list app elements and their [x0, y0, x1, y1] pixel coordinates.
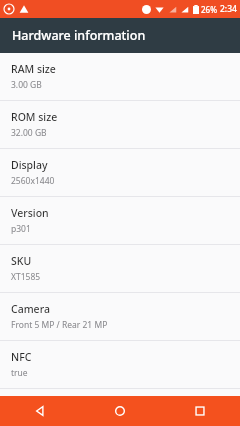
- button[interactable]: ROM size: [0, 101, 240, 148]
- staticText: Version: [11, 206, 49, 220]
- staticText: Camera: [11, 302, 50, 316]
- staticText: 3.00 GB: [11, 79, 42, 91]
- button[interactable]: Home: [80, 396, 160, 426]
- button[interactable]: SKU: [0, 245, 240, 292]
- button[interactable]: Recent apps: [160, 396, 240, 426]
- button[interactable]: RAM size: [0, 53, 240, 100]
- staticText: 2560x1440: [11, 175, 55, 187]
- staticText: 26%: [201, 4, 217, 15]
- button[interactable]: Camera: [0, 293, 240, 340]
- staticText: NFC: [11, 350, 32, 364]
- staticText: SKU: [11, 254, 32, 268]
- staticText: RAM size: [11, 62, 56, 76]
- staticText: ROM size: [11, 110, 58, 124]
- staticText: 2:34: [220, 3, 237, 15]
- staticText: Front 5 MP / Rear 21 MP: [11, 319, 108, 331]
- staticText: p301: [11, 223, 31, 235]
- staticText: Hardware information: [12, 27, 146, 44]
- staticText: Display: [11, 158, 48, 172]
- staticText: 32.00 GB: [11, 127, 47, 139]
- staticText: true: [11, 367, 28, 379]
- button[interactable]: Display: [0, 149, 240, 196]
- button[interactable]: Version: [0, 197, 240, 244]
- button[interactable]: NFC: [0, 341, 240, 388]
- button[interactable]: Back: [0, 396, 80, 426]
- staticText: XT1585: [11, 271, 41, 283]
